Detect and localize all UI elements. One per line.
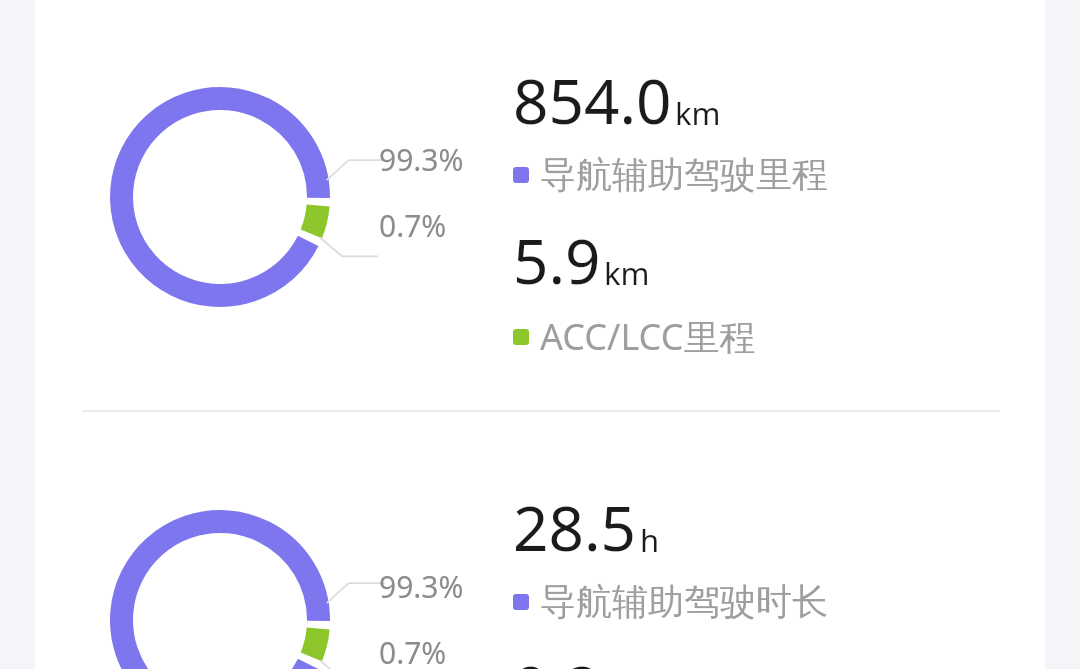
- staticText: km: [675, 92, 721, 134]
- staticText: 99.3%: [379, 139, 464, 180]
- staticText: 28.5: [513, 485, 637, 569]
- button[interactable]: 0.7%: [379, 205, 447, 246]
- button[interactable]: 5.9: [513, 218, 983, 361]
- staticText: h: [640, 519, 660, 561]
- button[interactable]: 28.5: [513, 485, 983, 624]
- staticText: 0.7%: [379, 632, 447, 669]
- staticText: 5.9: [513, 218, 601, 302]
- staticText: 导航辅助驾驶时长: [540, 579, 828, 624]
- button[interactable]: 99.3%: [379, 566, 464, 607]
- button[interactable]: 0.2: [513, 645, 983, 669]
- staticText: km: [604, 252, 650, 294]
- button[interactable]: 854.0: [513, 58, 983, 197]
- staticText: 99.3%: [379, 566, 464, 607]
- button[interactable]: Donut chart, 99.3 percent and 0.7 percen…: [20, 420, 420, 669]
- staticText: 0.7%: [379, 205, 447, 246]
- staticText: 854.0: [513, 58, 672, 142]
- staticText: ACC/LCC里程: [540, 312, 756, 361]
- staticText: 0.2: [513, 645, 601, 669]
- button[interactable]: 0.7%: [379, 632, 447, 669]
- button[interactable]: Donut chart, 99.3 percent and 0.7 percen…: [20, 0, 420, 397]
- staticText: 导航辅助驾驶里程: [540, 152, 828, 197]
- button[interactable]: 99.3%: [379, 139, 464, 180]
